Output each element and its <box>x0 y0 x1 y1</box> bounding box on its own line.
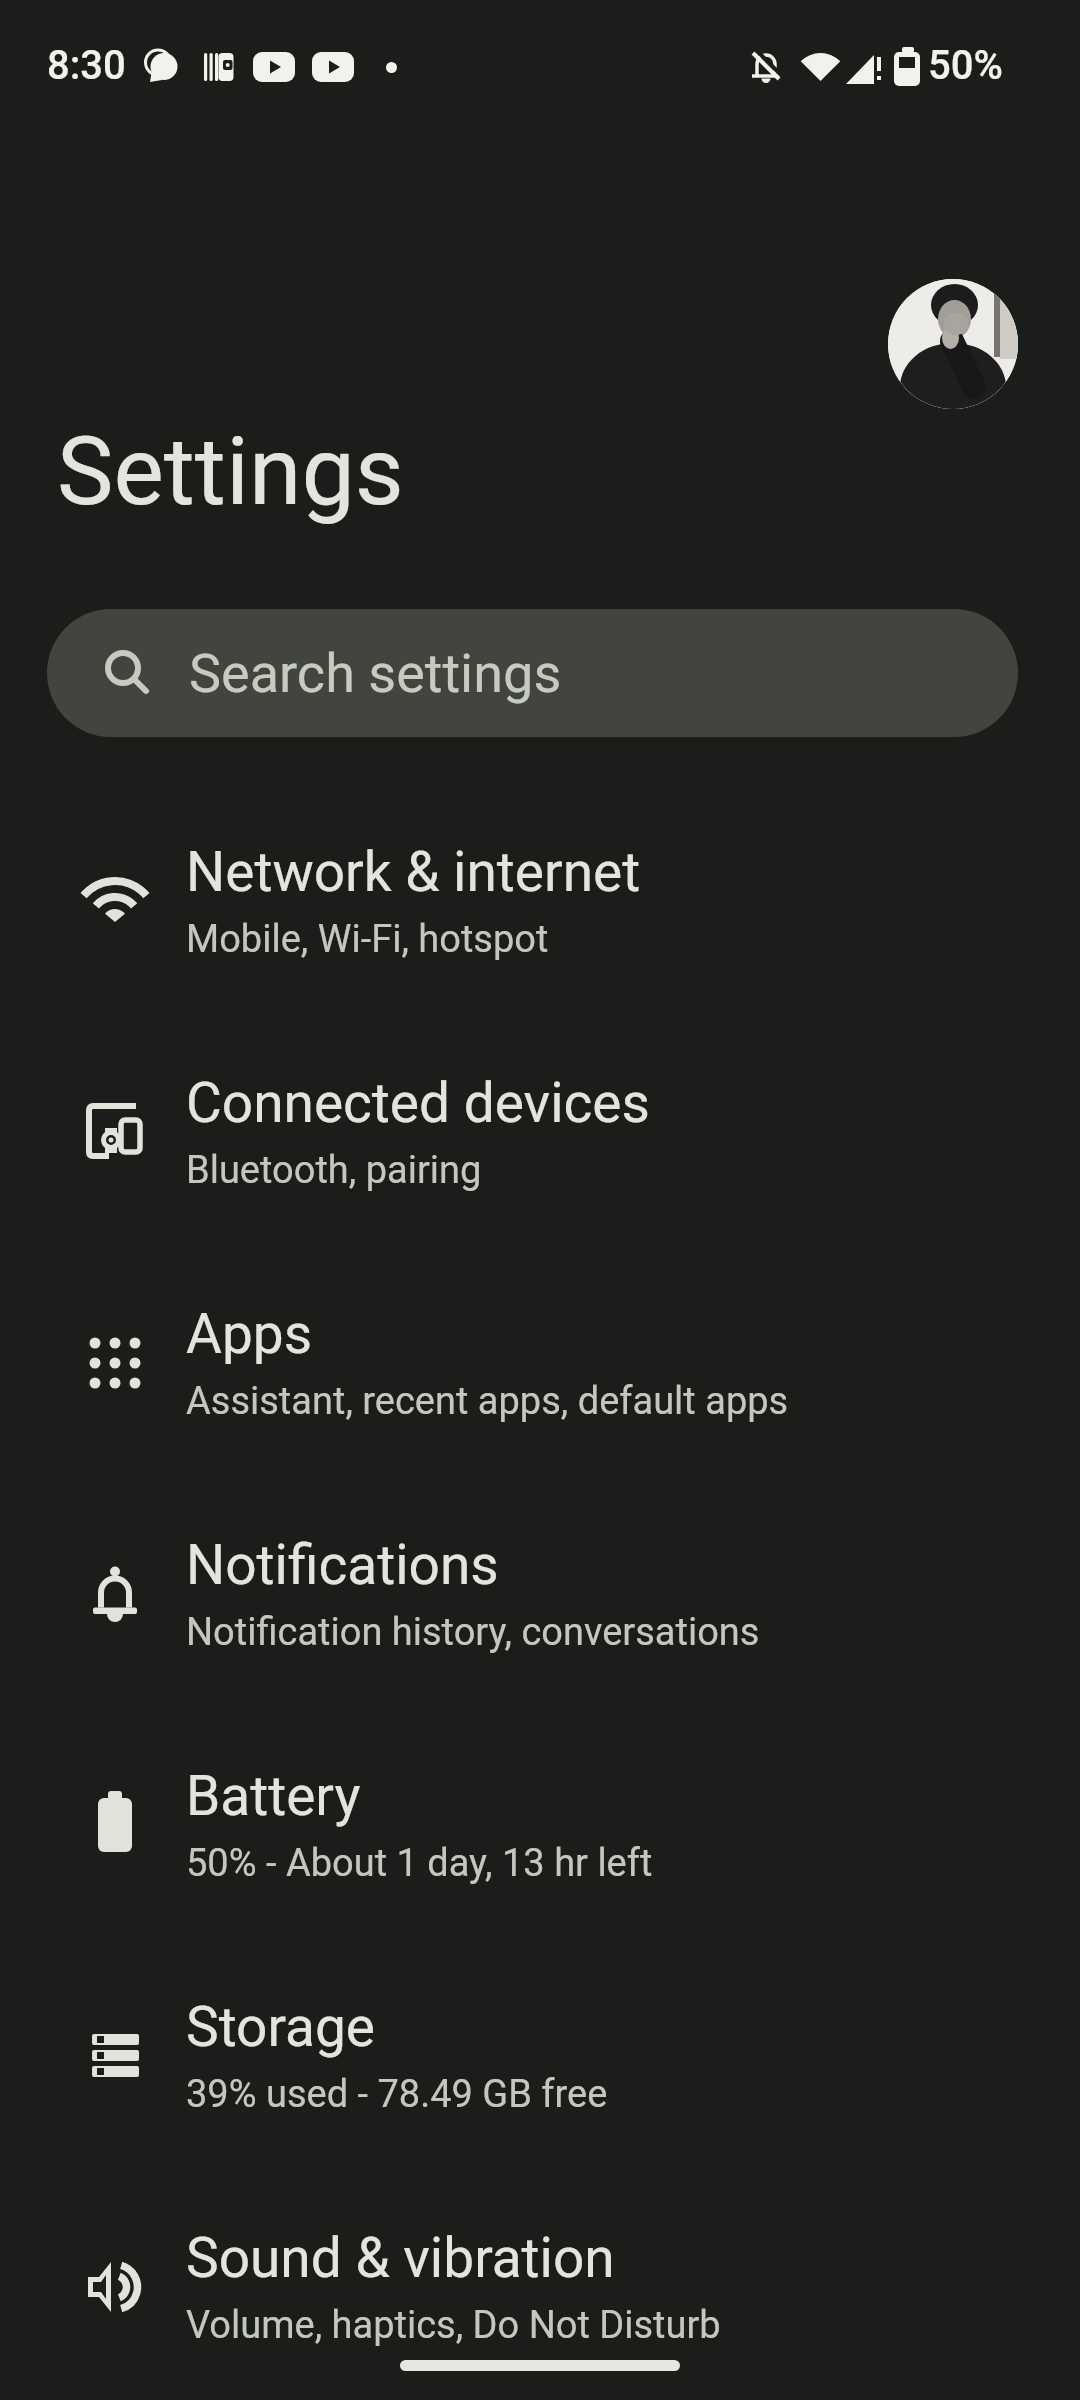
staticText: Mobile, Wi-Fi, hotspot <box>186 917 549 962</box>
staticText: Connected devices <box>186 1071 650 1135</box>
staticText: Apps <box>186 1302 313 1366</box>
staticText: Settings <box>57 416 404 527</box>
staticText: Notifications <box>186 1533 499 1597</box>
staticText: Search settings <box>189 642 562 705</box>
button[interactable] <box>888 279 1018 409</box>
button[interactable]: Network & internet <box>0 790 1080 1021</box>
button[interactable]: Search settings <box>47 609 1018 737</box>
button[interactable]: Sound & vibration <box>0 2176 1080 2400</box>
staticText: Assistant, recent apps, default apps <box>186 1379 789 1424</box>
button[interactable]: Connected devices <box>0 1021 1080 1252</box>
staticText: Bluetooth, pairing <box>186 1148 482 1193</box>
staticText: Sound & vibration <box>186 2226 615 2290</box>
button[interactable]: Notifications <box>0 1483 1080 1714</box>
staticText: Notification history, conversations <box>186 1610 760 1655</box>
button[interactable]: Apps <box>0 1252 1080 1483</box>
staticText: Battery <box>186 1764 361 1828</box>
staticText: Network & internet <box>186 840 641 904</box>
button[interactable]: Battery <box>0 1714 1080 1945</box>
staticText: Storage <box>186 1995 376 2059</box>
staticText: 50% - About 1 day, 13 hr left <box>186 1841 653 1886</box>
staticText: 50% <box>928 42 1003 89</box>
staticText: 39% used - 78.49 GB free <box>186 2072 608 2117</box>
staticText: 8:30 <box>47 42 126 89</box>
button[interactable]: Storage <box>0 1945 1080 2176</box>
staticText: Volume, haptics, Do Not Disturb <box>186 2303 721 2348</box>
